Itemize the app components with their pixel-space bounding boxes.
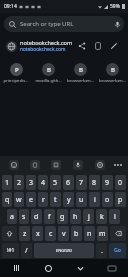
staticText: c xyxy=(49,229,53,239)
staticText: 5 xyxy=(53,178,58,188)
button[interactable]: q xyxy=(2,192,12,207)
staticText: i xyxy=(94,195,96,205)
button[interactable]: Edit query xyxy=(106,38,122,54)
button[interactable]: l xyxy=(109,209,120,224)
button[interactable]: Backspace xyxy=(110,226,126,241)
staticText: Search or type URL xyxy=(20,20,74,28)
staticText: u xyxy=(79,195,84,205)
button[interactable]: Voice search xyxy=(110,17,124,31)
button[interactable]: 6 xyxy=(63,175,74,190)
staticText: h xyxy=(73,212,78,222)
staticText: f xyxy=(48,212,51,222)
button[interactable]: Clipboard xyxy=(24,156,45,174)
button[interactable]: x xyxy=(32,226,43,241)
staticText: w xyxy=(16,195,22,205)
button[interactable]: m xyxy=(97,226,108,241)
button[interactable]: r xyxy=(38,192,48,207)
staticText: d xyxy=(34,212,39,222)
staticText: B xyxy=(111,66,115,74)
button[interactable]: c xyxy=(45,226,56,241)
button[interactable]: Emoji xyxy=(3,156,24,174)
button[interactable]: 5 xyxy=(50,175,61,190)
button[interactable]: u xyxy=(76,192,87,207)
button[interactable]: ENG(US) xyxy=(34,243,94,258)
button[interactable]: o xyxy=(102,192,113,207)
button[interactable]: e xyxy=(26,192,36,207)
button[interactable]: b xyxy=(71,226,82,241)
staticText: p xyxy=(118,195,123,205)
staticText: s xyxy=(22,212,26,222)
button[interactable]: Home xyxy=(32,259,64,277)
button[interactable]: 2 xyxy=(14,175,24,190)
button[interactable]: notebookcheck.com xyxy=(4,35,124,57)
staticText: notebookcheck.com xyxy=(20,46,66,53)
button[interactable]: 0 xyxy=(115,175,126,190)
button[interactable]: / xyxy=(21,243,32,258)
button[interactable]: j xyxy=(83,209,94,224)
button[interactable]: 3 xyxy=(26,175,36,190)
button[interactable]: v xyxy=(58,226,69,241)
staticText: notebookcheck.com xyxy=(20,39,73,46)
button[interactable]: Share xyxy=(74,38,90,54)
button[interactable]: f xyxy=(44,209,55,224)
button[interactable]: Switch keyboard xyxy=(96,259,128,277)
staticText: B xyxy=(47,66,51,74)
button[interactable]: !#1 xyxy=(2,243,19,258)
button[interactable]: Recents xyxy=(0,259,32,277)
staticText: / xyxy=(25,246,28,256)
staticText: 6 xyxy=(66,178,71,188)
staticText: o xyxy=(105,195,110,205)
button[interactable]: t xyxy=(50,192,61,207)
button[interactable]: p xyxy=(115,192,126,207)
button[interactable]: n xyxy=(84,226,95,241)
staticText: t xyxy=(54,195,57,205)
button[interactable]: B xyxy=(64,61,96,86)
button[interactable]: Translate xyxy=(45,156,67,174)
button[interactable]: 9 xyxy=(102,175,113,190)
staticText: 2 xyxy=(17,178,22,188)
button[interactable]: z xyxy=(19,226,30,241)
button[interactable]: Hide keyboard xyxy=(64,259,96,277)
button[interactable]: Settings xyxy=(89,156,111,174)
button[interactable]: P xyxy=(0,61,32,86)
button[interactable]: More options xyxy=(111,156,125,174)
button[interactable]: h xyxy=(70,209,81,224)
staticText: 3 xyxy=(29,178,34,188)
staticText: a xyxy=(10,212,14,222)
staticText: P xyxy=(15,66,19,74)
button[interactable]: d xyxy=(31,209,42,224)
button[interactable]: s xyxy=(19,209,29,224)
staticText: ENG(US) xyxy=(56,248,72,253)
button[interactable]: Search or type URL xyxy=(4,16,124,32)
button[interactable]: 1 xyxy=(2,175,12,190)
button[interactable]: Shift xyxy=(2,226,17,241)
staticText: Go xyxy=(114,247,121,254)
staticText: z xyxy=(23,229,27,239)
staticText: r xyxy=(42,195,45,205)
button[interactable]: g xyxy=(57,209,68,224)
button[interactable]: Open in new tab xyxy=(90,38,106,54)
button[interactable]: 4 xyxy=(38,175,48,190)
button[interactable]: a xyxy=(7,209,17,224)
staticText: 4 xyxy=(41,178,46,188)
button[interactable]: y xyxy=(63,192,74,207)
staticText: 8 xyxy=(92,178,97,188)
button[interactable]: i xyxy=(89,192,100,207)
staticText: q xyxy=(5,195,10,205)
button[interactable]: B xyxy=(96,61,128,86)
button[interactable]: k xyxy=(96,209,107,224)
button[interactable]: 7 xyxy=(76,175,87,190)
staticText: l xyxy=(114,212,116,222)
staticText: B xyxy=(79,66,83,74)
staticText: n xyxy=(87,229,92,239)
button[interactable]: w xyxy=(14,192,24,207)
button[interactable]: Voice input xyxy=(67,156,89,174)
button[interactable]: Go xyxy=(109,243,126,258)
staticText: k xyxy=(100,212,104,222)
staticText: 59% xyxy=(110,3,120,10)
staticText: 09:14 xyxy=(4,3,17,10)
staticText: principedis... xyxy=(3,78,29,84)
button[interactable]: . xyxy=(96,243,107,258)
button[interactable]: 8 xyxy=(89,175,100,190)
button[interactable]: B xyxy=(32,61,64,86)
